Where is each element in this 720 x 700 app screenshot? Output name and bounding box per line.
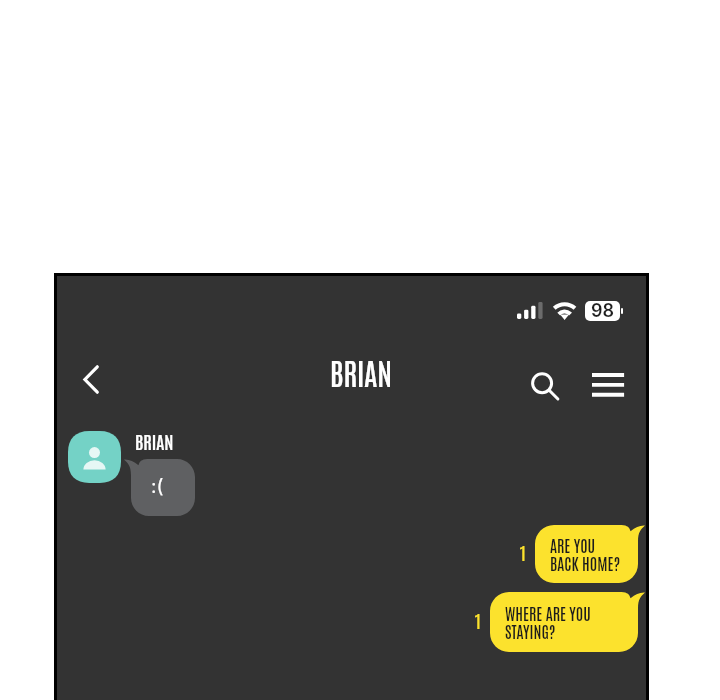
- button[interactable]: Contact avatar: [68, 431, 121, 483]
- staticText: :(: [151, 475, 164, 498]
- staticText: 98: [591, 301, 615, 320]
- button[interactable]: WHERE ARE YOU STAYING?: [490, 592, 645, 652]
- button[interactable]: Search: [521, 363, 565, 407]
- staticText: 1: [519, 540, 527, 563]
- button[interactable]: Menu: [592, 373, 625, 397]
- staticText: ARE YOU BACK HOME?: [550, 535, 621, 573]
- staticText: BRIAN: [330, 354, 392, 392]
- button[interactable]: :(: [124, 459, 195, 516]
- staticText: BRIAN: [135, 429, 174, 452]
- button[interactable]: ARE YOU BACK HOME?: [535, 525, 645, 583]
- staticText: WHERE ARE YOU STAYING?: [505, 603, 591, 641]
- button[interactable]: Back: [68, 351, 114, 407]
- staticText: 1: [474, 608, 482, 631]
